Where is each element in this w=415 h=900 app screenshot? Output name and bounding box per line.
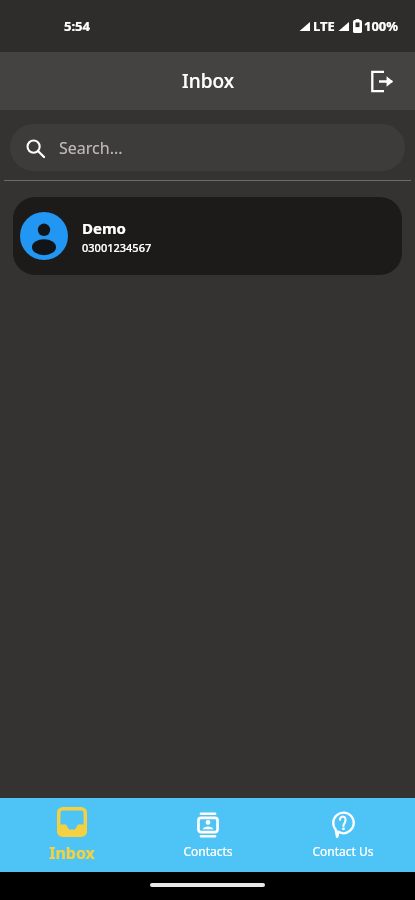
button[interactable]: Contacts — [144, 812, 272, 859]
staticText: Contact Us — [312, 843, 374, 859]
staticText: Demo — [82, 218, 126, 238]
button[interactable]: Inbox — [8, 807, 136, 864]
button[interactable]: Search... — [10, 124, 405, 171]
staticText: LTE — [313, 17, 335, 35]
button[interactable]: Contact Us — [279, 811, 407, 859]
staticText: Contacts — [183, 843, 233, 859]
staticText: 5:54 — [64, 17, 90, 35]
staticText: 100% — [364, 17, 399, 35]
staticText: Inbox — [49, 842, 95, 864]
button[interactable]: Logout — [359, 59, 403, 103]
staticText: Inbox — [182, 68, 234, 94]
staticText: 03001234567 — [82, 240, 152, 255]
button[interactable]: Demo — [13, 197, 402, 275]
staticText: Search... — [59, 137, 123, 159]
